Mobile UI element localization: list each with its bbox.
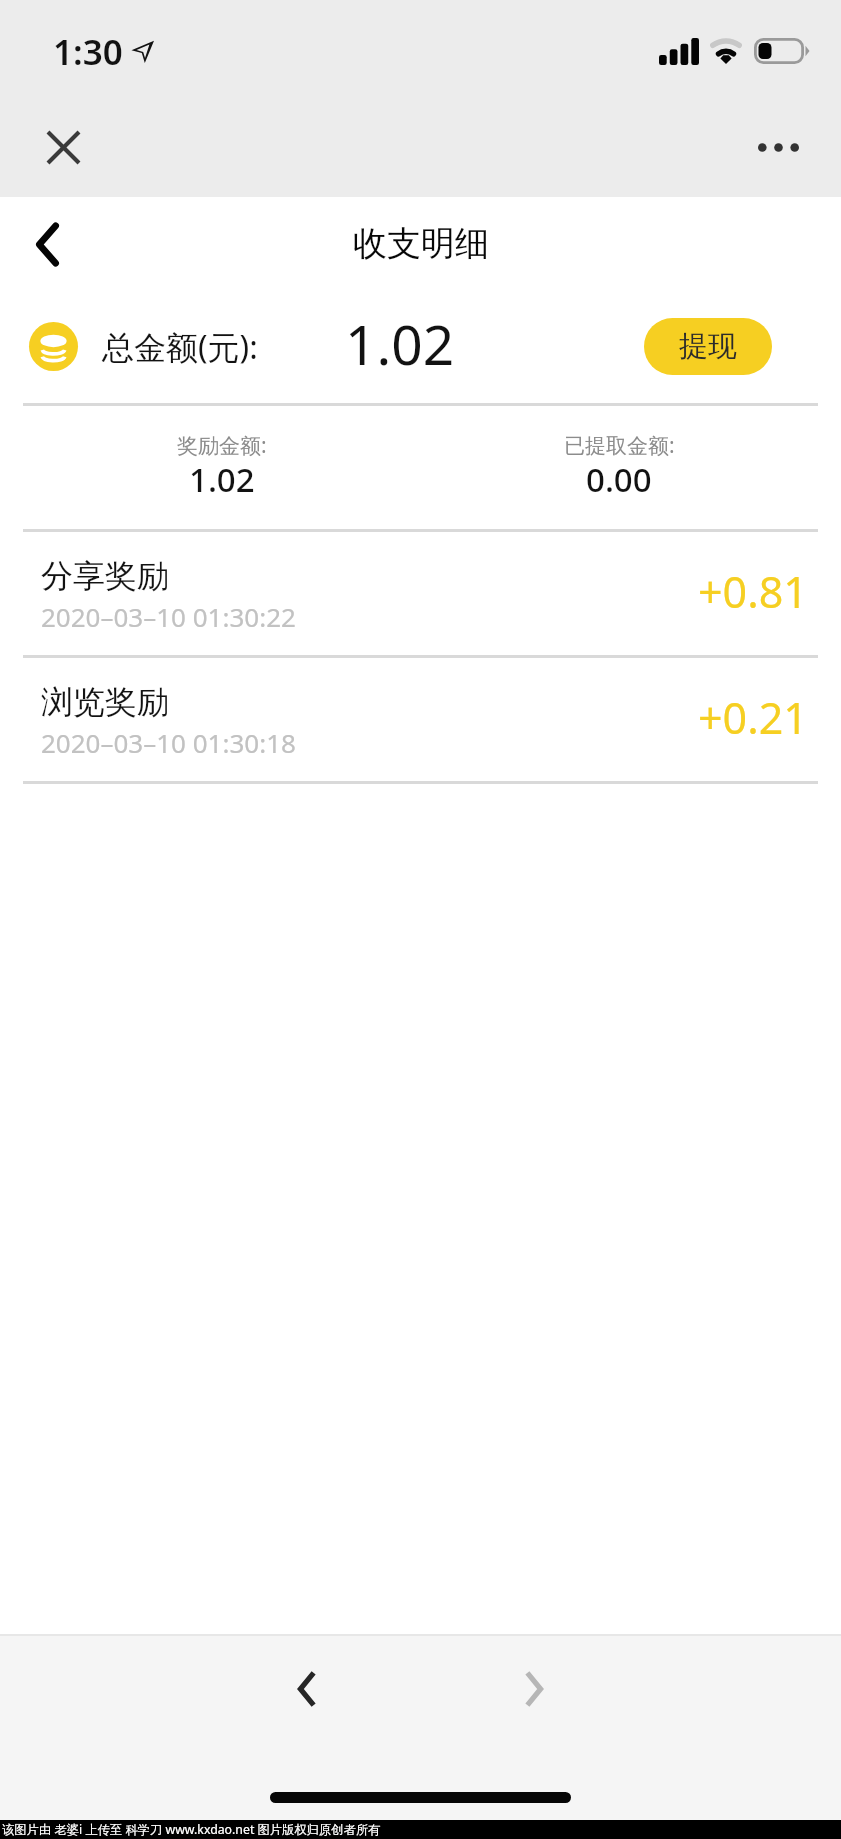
button[interactable]: Back <box>270 1652 343 1725</box>
button[interactable]: 分享奖励 <box>0 532 841 655</box>
staticText: 收支明细 <box>353 222 489 265</box>
staticText: 1:30 <box>53 28 123 76</box>
button[interactable]: 奖励金额: <box>23 406 420 529</box>
staticText: 浏览奖励 <box>41 682 169 722</box>
button[interactable]: 已提取金额: <box>420 406 818 529</box>
staticText: 分享奖励 <box>41 556 169 596</box>
staticText: 已提取金额: <box>564 431 675 460</box>
staticText: 1.02 <box>189 457 255 502</box>
button[interactable]: Back <box>10 208 82 280</box>
staticText: 2020–03–10 01:30:18 <box>41 725 296 760</box>
button[interactable]: Close <box>34 118 92 176</box>
staticText: +0.21 <box>698 688 808 747</box>
staticText: 提现 <box>679 328 737 365</box>
staticText: 2020–03–10 01:30:22 <box>41 599 296 634</box>
button[interactable]: 提现 <box>644 318 772 375</box>
staticText: 0.00 <box>586 457 652 502</box>
staticText: 奖励金额: <box>177 431 267 460</box>
staticText: 1.02 <box>345 306 455 381</box>
staticText: 该图片由 老婆i 上传至 科学刀 www.kxdao.net 图片版权归原创者所… <box>2 1821 381 1838</box>
staticText: 总金额(元): <box>102 325 258 369</box>
button[interactable]: 浏览奖励 <box>0 658 841 781</box>
button[interactable]: More options <box>749 118 807 176</box>
staticText: +0.81 <box>698 562 808 621</box>
button[interactable]: Forward <box>497 1652 570 1725</box>
